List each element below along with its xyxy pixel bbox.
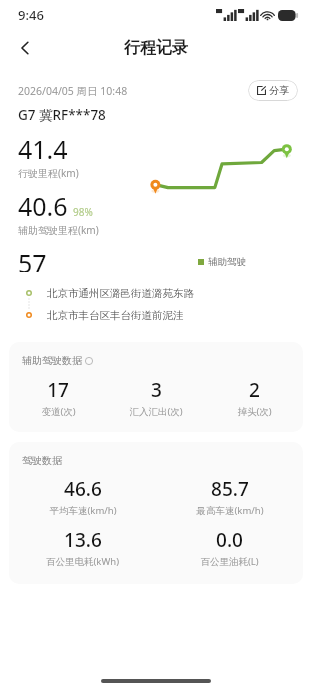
staticText: 百公里油耗(L) [200,555,259,568]
staticText: 辅助驾驶数据 [22,354,82,367]
staticText: 0.0 [216,527,243,553]
staticText: 百公里电耗(kWh) [46,555,119,568]
staticText: G7 冀RF***78 [18,106,106,124]
staticText: 行驶里程(km) [18,166,79,180]
button[interactable]: 辅助驾驶数据 [9,342,303,432]
staticText: 13.6 [64,527,102,553]
staticText: 分享 [269,84,289,97]
staticText: 北京市通州区潞邑街道潞苑东路 [47,287,194,300]
button[interactable]: Back [8,31,42,65]
staticText: 辅助驾驶 [208,256,246,268]
staticText: 驾驶数据 [22,454,62,467]
button[interactable]: 驾驶数据 [9,442,303,584]
staticText: 57 [18,246,47,272]
staticText: 46.6 [64,476,102,502]
staticText: 辅助驾驶里程(km) [18,223,99,237]
staticText: 2 [249,377,260,403]
staticText: 3 [151,377,162,403]
staticText: 40.6 [18,189,68,223]
staticText: 变道(次) [41,405,76,418]
staticText: 最高车速(km/h) [196,504,264,517]
staticText: 汇入汇出(次) [129,405,183,418]
staticText: 41.4 [18,132,68,166]
staticText: 行程记录 [124,38,188,58]
staticText: 17 [47,377,69,403]
staticText: 98% [73,205,93,219]
staticText: 掉头(次) [237,405,272,418]
staticText: 85.7 [211,476,249,502]
staticText: 北京市丰台区丰台街道前泥洼 [47,309,184,322]
staticText: 2026/04/05 周日 10:48 [18,84,128,98]
staticText: 平均车速(km/h) [49,504,117,517]
staticText: 9:46 [18,6,44,24]
button[interactable]: 分享 [248,80,298,101]
